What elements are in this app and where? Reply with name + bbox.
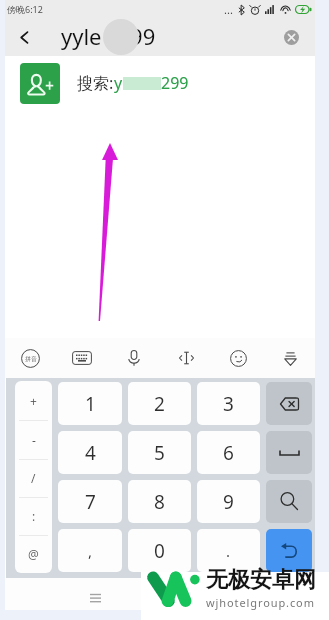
button[interactable]: 2 xyxy=(128,382,191,425)
button[interactable]: + xyxy=(15,381,52,420)
button[interactable]: / xyxy=(15,459,52,497)
staticText: 299 xyxy=(161,72,189,94)
staticText: / xyxy=(31,470,36,486)
staticText: wjhotelgroup.com xyxy=(206,595,315,610)
staticText: 7 xyxy=(85,489,96,515)
staticText: y xyxy=(114,72,123,94)
staticText: , xyxy=(88,541,93,561)
button[interactable]: Emoji xyxy=(212,338,264,378)
staticText: ... xyxy=(224,2,233,17)
staticText: 搜索: xyxy=(77,72,114,94)
staticText: 拼音 xyxy=(25,355,37,363)
staticText: . xyxy=(226,541,231,561)
button[interactable]: 5 xyxy=(128,431,191,474)
staticText: 0 xyxy=(154,538,165,564)
button[interactable]: @ xyxy=(15,535,52,573)
staticText: : xyxy=(32,508,36,524)
staticText: 9 xyxy=(223,489,234,515)
button[interactable]: Backspace xyxy=(266,382,312,425)
button[interactable]: 搜索: xyxy=(0,56,329,110)
button[interactable]: Enter xyxy=(266,529,312,572)
button[interactable]: Search xyxy=(266,480,312,523)
staticText: 傍晚6:12 xyxy=(7,3,43,15)
staticText: @ xyxy=(28,546,39,562)
button[interactable]: Recent apps xyxy=(81,583,109,611)
button[interactable]: Clear text xyxy=(279,25,303,49)
button[interactable]: 7 xyxy=(58,480,122,523)
button[interactable]: Space xyxy=(266,431,312,474)
button[interactable]: 8 xyxy=(128,480,191,523)
staticText: 4 xyxy=(85,440,96,466)
button[interactable]: 9 xyxy=(197,480,260,523)
button[interactable]: Voice input xyxy=(108,338,160,378)
staticText: 6 xyxy=(223,440,234,466)
button[interactable]: 4 xyxy=(58,431,122,474)
button[interactable]: Back xyxy=(10,23,38,51)
button[interactable]: Input method xyxy=(5,338,56,378)
button[interactable]: 1 xyxy=(58,382,122,425)
button[interactable]: - xyxy=(15,420,52,459)
staticText: 无极安卓网 xyxy=(206,566,316,594)
button[interactable]: . xyxy=(197,529,260,572)
staticText: 2 xyxy=(154,391,165,417)
staticText: - xyxy=(32,432,36,448)
staticText: 1 xyxy=(85,391,96,417)
staticText: yyle 99 xyxy=(61,21,156,51)
button[interactable]: 3 xyxy=(197,382,260,425)
button[interactable]: 6 xyxy=(197,431,260,474)
button[interactable]: Move cursor xyxy=(160,338,212,378)
staticText: 5 xyxy=(154,440,165,466)
staticText: + xyxy=(30,393,37,409)
button[interactable]: , xyxy=(58,529,122,572)
staticText: 8 xyxy=(154,489,165,515)
button[interactable]: Keyboard xyxy=(56,338,108,378)
button[interactable]: 0 xyxy=(128,529,191,572)
button[interactable]: : xyxy=(15,497,52,535)
staticText: 3 xyxy=(223,391,234,417)
button[interactable]: Hide keyboard xyxy=(264,338,316,378)
